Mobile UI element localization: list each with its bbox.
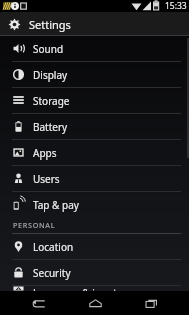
button[interactable]: Tap & pay — [0, 192, 189, 217]
button[interactable]: Users — [0, 166, 189, 191]
staticText: PERSONAL — [13, 220, 56, 230]
button[interactable]: Location — [0, 234, 189, 259]
staticText: 15:33 — [165, 0, 187, 12]
button[interactable]: Recent apps — [133, 291, 169, 315]
button[interactable]: Home — [77, 291, 113, 315]
staticText: Users — [33, 172, 60, 186]
staticText: Location — [33, 240, 74, 254]
button[interactable]: Display — [0, 62, 189, 87]
button[interactable]: Language & input — [0, 286, 189, 291]
staticText: Settings — [29, 17, 71, 32]
button[interactable]: Security — [0, 260, 189, 285]
staticText: Sound — [33, 42, 64, 56]
staticText: Apps — [33, 146, 57, 160]
staticText: Battery — [33, 120, 68, 134]
staticText: Display — [33, 68, 68, 82]
button[interactable]: Storage — [0, 88, 189, 113]
staticText: Tap & pay — [33, 198, 79, 212]
button[interactable]: Back — [20, 291, 56, 315]
staticText: Language & input — [33, 286, 117, 291]
button[interactable]: Battery — [0, 114, 189, 139]
staticText: Security — [33, 266, 71, 280]
button[interactable]: Sound — [0, 36, 189, 61]
button[interactable]: Apps — [0, 140, 189, 165]
staticText: Storage — [33, 94, 70, 108]
